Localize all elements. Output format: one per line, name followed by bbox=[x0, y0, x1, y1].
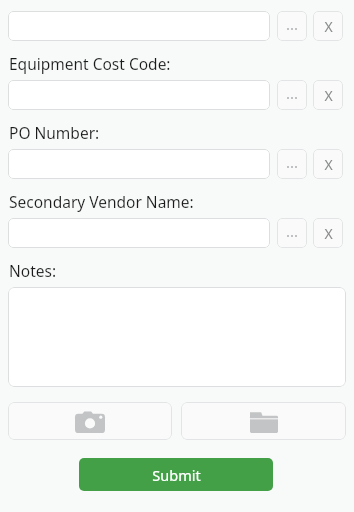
button[interactable]: Clear bbox=[313, 11, 343, 41]
staticText: PO Number: bbox=[9, 122, 100, 143]
button[interactable]: Clear bbox=[313, 218, 343, 248]
staticText: X bbox=[324, 86, 333, 105]
button[interactable] bbox=[8, 11, 270, 41]
staticText: Submit bbox=[152, 465, 201, 485]
staticText: Secondary Vendor Name: bbox=[9, 191, 194, 212]
button[interactable] bbox=[8, 218, 270, 248]
button[interactable]: More options bbox=[277, 80, 307, 110]
button[interactable] bbox=[8, 149, 270, 179]
button[interactable]: Clear bbox=[313, 149, 343, 179]
staticText: X bbox=[324, 155, 333, 174]
button[interactable] bbox=[8, 80, 270, 110]
button[interactable]: Submit bbox=[79, 458, 273, 491]
button[interactable]: More options bbox=[277, 149, 307, 179]
button[interactable]: More options bbox=[277, 11, 307, 41]
staticText: Notes: bbox=[9, 260, 57, 281]
button[interactable]: Browse files bbox=[181, 402, 346, 440]
button[interactable]: More options bbox=[277, 218, 307, 248]
button[interactable]: Clear bbox=[313, 80, 343, 110]
staticText: X bbox=[324, 224, 333, 243]
button[interactable]: Take photo bbox=[8, 402, 172, 440]
button[interactable] bbox=[8, 287, 346, 387]
staticText: X bbox=[324, 17, 333, 36]
staticText: Equipment Cost Code: bbox=[9, 53, 171, 74]
